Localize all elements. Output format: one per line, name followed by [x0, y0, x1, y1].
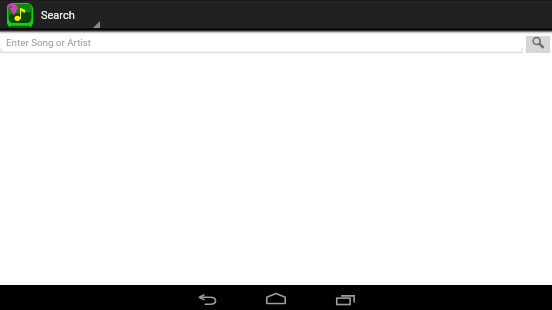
button[interactable]: Recent apps: [311, 285, 379, 310]
button[interactable]: Back: [174, 285, 242, 310]
button[interactable]: Home: [242, 285, 310, 310]
button[interactable]: Enter Song or Artist: [0, 31, 523, 57]
staticText: Enter Song or Artist: [6, 37, 92, 48]
staticText: Search: [41, 9, 75, 22]
button[interactable]: Search: [526, 33, 550, 53]
